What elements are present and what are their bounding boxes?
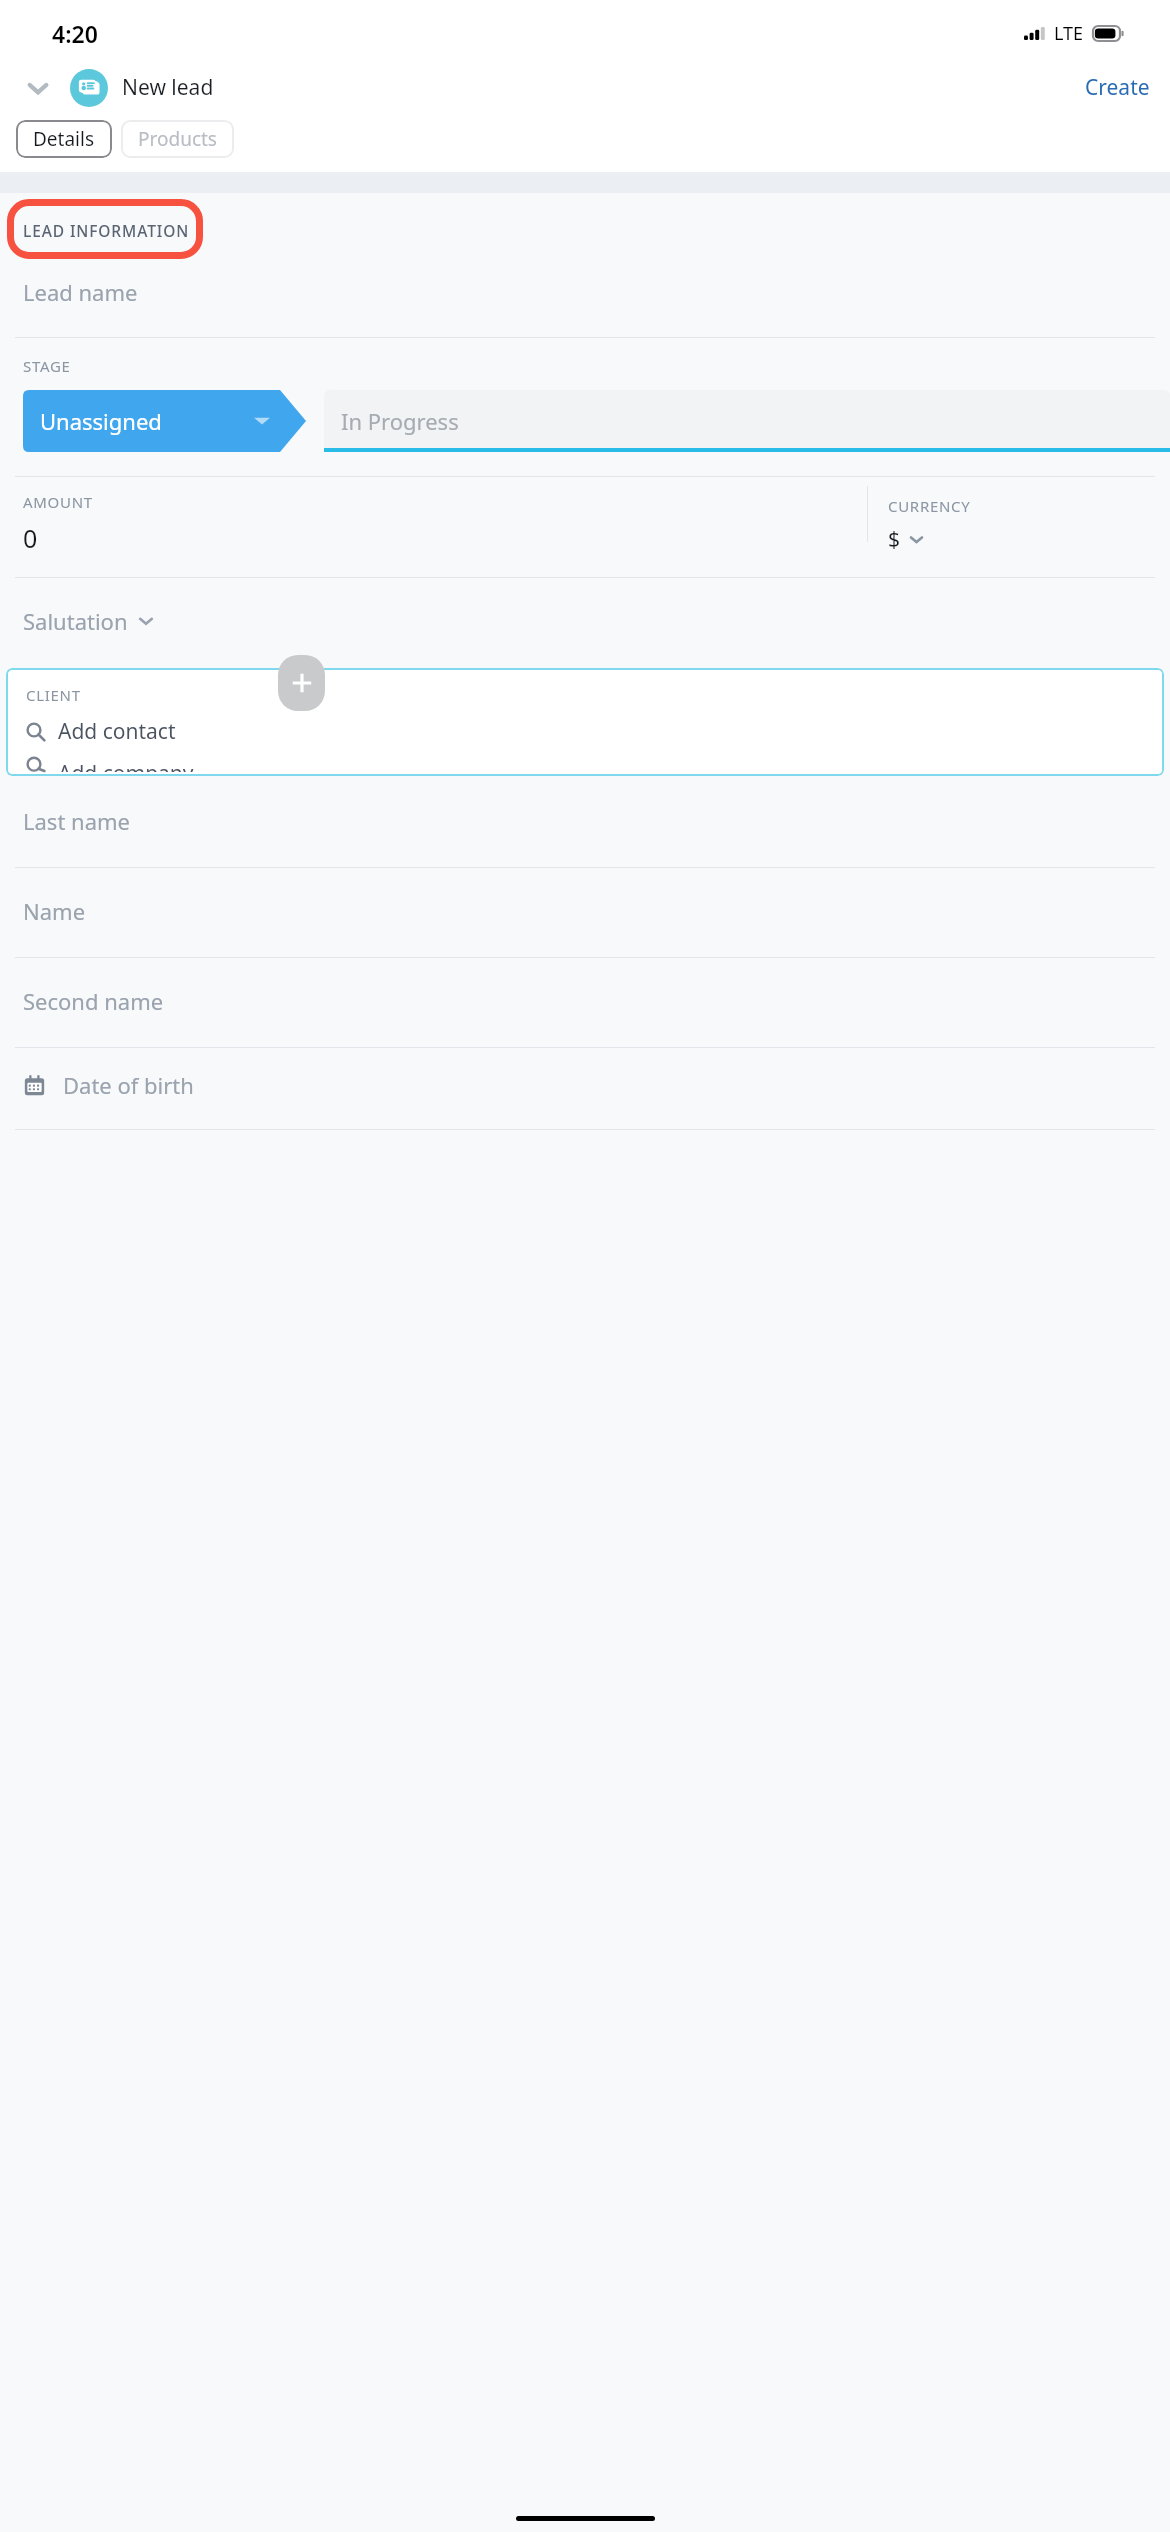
staticText: Add company [58, 759, 194, 772]
staticText: STAGE [23, 356, 71, 376]
staticText: AMOUNT [23, 492, 93, 512]
staticText: Add contact [58, 717, 176, 746]
button[interactable]: Add [278, 655, 325, 711]
button[interactable]: Products [121, 120, 234, 158]
staticText: Last name [23, 806, 130, 836]
button[interactable]: Details [16, 120, 112, 158]
button[interactable]: $ [888, 523, 923, 556]
staticText: Unassigned [40, 406, 162, 436]
staticText: Salutation [23, 606, 128, 636]
staticText: Date of birth [63, 1070, 194, 1100]
staticText: 0 [23, 521, 38, 555]
staticText: LTE [1054, 21, 1084, 46]
staticText: Lead name [23, 277, 138, 307]
button[interactable]: Salutation [23, 606, 153, 636]
staticText: New lead [122, 73, 214, 102]
staticText: Details [33, 126, 95, 152]
staticText: In Progress [341, 406, 459, 436]
staticText: Create [1085, 73, 1150, 102]
button[interactable]: Unassigned [23, 390, 306, 452]
staticText: 4:20 [52, 18, 98, 49]
staticText: Second name [23, 986, 164, 1016]
staticText: Products [138, 126, 217, 152]
button[interactable]: Add company [26, 755, 194, 776]
button[interactable]: Add contact [26, 713, 176, 750]
staticText: CURRENCY [888, 496, 971, 516]
staticText: LEAD INFORMATION [23, 220, 190, 241]
button[interactable]: Create [1081, 67, 1154, 108]
staticText: Name [23, 896, 86, 926]
staticText: CLIENT [26, 685, 81, 705]
button[interactable]: In Progress [324, 390, 1170, 452]
button[interactable]: Date of birth [23, 1070, 1170, 1100]
staticText: $ [888, 525, 901, 554]
button[interactable]: Collapse [16, 66, 60, 110]
